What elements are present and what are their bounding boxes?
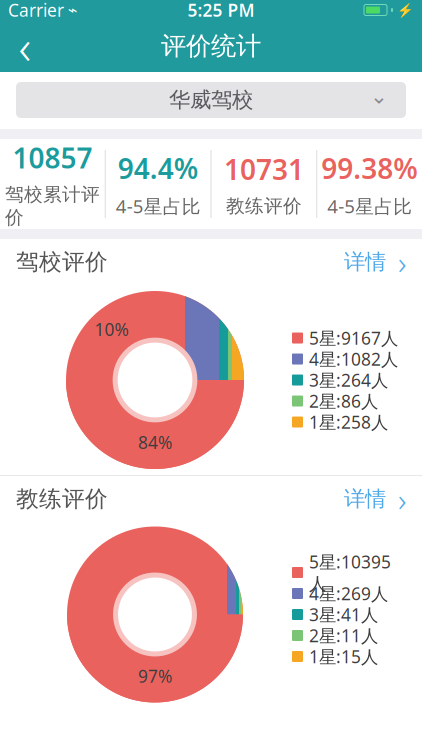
- staticText: 5:25 PM: [187, 0, 254, 21]
- staticText: 驾校评价: [16, 248, 108, 276]
- staticText: 2星:86人: [309, 389, 378, 412]
- button[interactable]: 华威驾校: [16, 82, 406, 118]
- button[interactable]: Back: [0, 20, 50, 72]
- staticText: 华威驾校: [169, 87, 253, 113]
- staticText: 3星:41人: [309, 603, 378, 626]
- staticText: ›: [398, 241, 406, 283]
- staticText: 99.38%: [321, 149, 418, 187]
- staticText: 4星:269人: [309, 582, 388, 605]
- staticText: 1星:258人: [309, 410, 388, 433]
- button[interactable]: 详情: [328, 470, 406, 528]
- staticText: 10731: [224, 150, 304, 188]
- staticText: 5星:9167人: [309, 326, 398, 349]
- staticText: ›: [398, 478, 406, 520]
- staticText: 4星:1082人: [309, 347, 398, 370]
- staticText: ⌁: [68, 1, 78, 19]
- staticText: 驾校累计评价: [5, 183, 100, 229]
- staticText: 10%: [94, 318, 128, 341]
- staticText: 3星:264人: [309, 368, 388, 391]
- staticText: 教练评价: [16, 485, 108, 513]
- staticText: 详情: [344, 249, 386, 275]
- staticText: 评价统计: [161, 30, 261, 61]
- staticText: 10857: [12, 139, 92, 176]
- staticText: ‹: [18, 14, 31, 78]
- staticText: ⌄: [370, 84, 388, 108]
- button[interactable]: 详情: [328, 233, 406, 291]
- staticText: ⚡: [397, 2, 414, 18]
- staticText: 4-5星占比: [327, 194, 412, 218]
- staticText: 97%: [138, 664, 172, 687]
- staticText: 5星:10395人: [309, 550, 391, 595]
- staticText: 1星:15人: [309, 645, 378, 668]
- staticText: 2星:11人: [309, 624, 378, 647]
- staticText: 教练评价: [226, 195, 302, 217]
- staticText: 94.4%: [118, 149, 199, 187]
- staticText: 4-5星占比: [116, 194, 201, 218]
- staticText: 84%: [138, 431, 172, 454]
- staticText: 详情: [344, 486, 386, 512]
- staticText: Carrier: [8, 0, 64, 21]
